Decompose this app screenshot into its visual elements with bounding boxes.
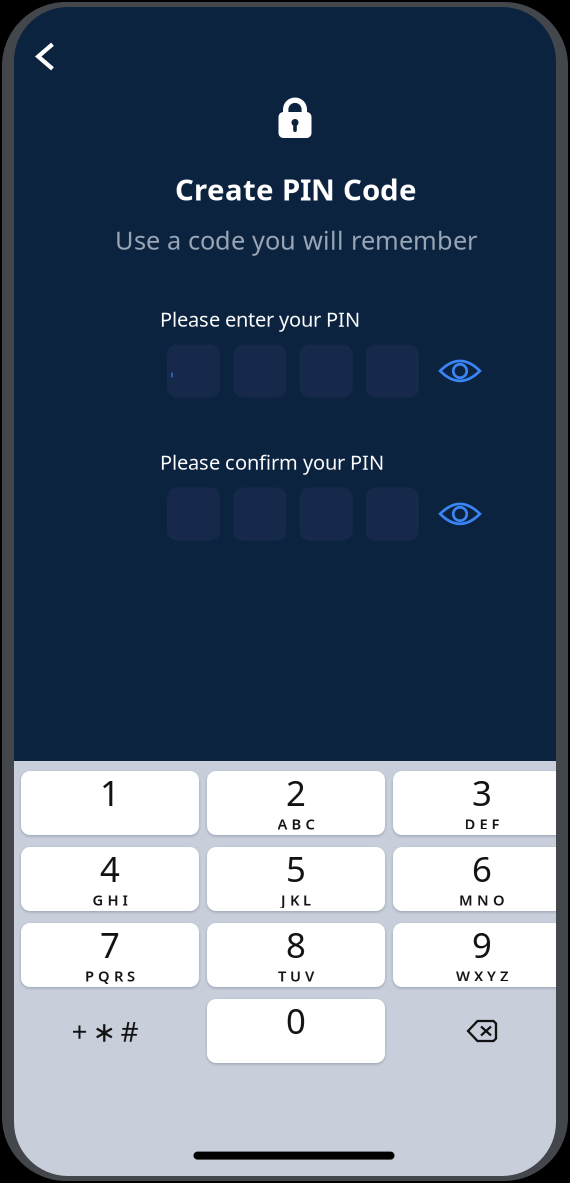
staticText: J K L bbox=[281, 890, 311, 909]
button[interactable]: Show PIN bbox=[429, 487, 491, 540]
staticText: 0 bbox=[286, 997, 306, 1043]
button[interactable]: 8 bbox=[207, 923, 385, 987]
staticText: 6 bbox=[472, 845, 492, 891]
button[interactable]: 4 bbox=[21, 847, 199, 911]
staticText: 3 bbox=[472, 769, 492, 815]
staticText: 7 bbox=[100, 921, 120, 967]
staticText: 8 bbox=[286, 921, 306, 967]
button[interactable]: 3 bbox=[393, 771, 570, 835]
staticText: Please confirm your PIN bbox=[160, 449, 384, 475]
button[interactable]: Delete bbox=[393, 999, 570, 1063]
staticText: 2 bbox=[286, 769, 306, 815]
staticText: D E F bbox=[464, 814, 499, 833]
staticText: W X Y Z bbox=[456, 966, 508, 985]
button[interactable]: 1 bbox=[21, 771, 199, 835]
button[interactable]: Show PIN bbox=[429, 344, 491, 397]
staticText: 1 bbox=[100, 769, 120, 815]
staticText: G H I bbox=[92, 890, 127, 909]
button[interactable]: Back bbox=[17, 28, 73, 84]
staticText: 4 bbox=[100, 845, 120, 891]
button[interactable]: Symbols bbox=[21, 999, 199, 1063]
staticText: 9 bbox=[472, 921, 492, 967]
staticText: A B C bbox=[277, 814, 314, 833]
button[interactable]: 5 bbox=[207, 847, 385, 911]
staticText: Please enter your PIN bbox=[160, 306, 360, 332]
button[interactable]: 7 bbox=[21, 923, 199, 987]
button[interactable]: 9 bbox=[393, 923, 570, 987]
staticText: Create PIN Code bbox=[175, 169, 417, 208]
button[interactable]: 0 bbox=[207, 999, 385, 1063]
staticText: + ∗ # bbox=[71, 1012, 138, 1050]
button[interactable]: 6 bbox=[393, 847, 570, 911]
staticText: T U V bbox=[278, 966, 314, 985]
staticText: P Q R S bbox=[85, 966, 135, 985]
button[interactable]: 2 bbox=[207, 771, 385, 835]
staticText: 5 bbox=[286, 845, 306, 891]
staticText: M N O bbox=[459, 890, 505, 909]
staticText: Use a code you will remember bbox=[115, 223, 477, 257]
